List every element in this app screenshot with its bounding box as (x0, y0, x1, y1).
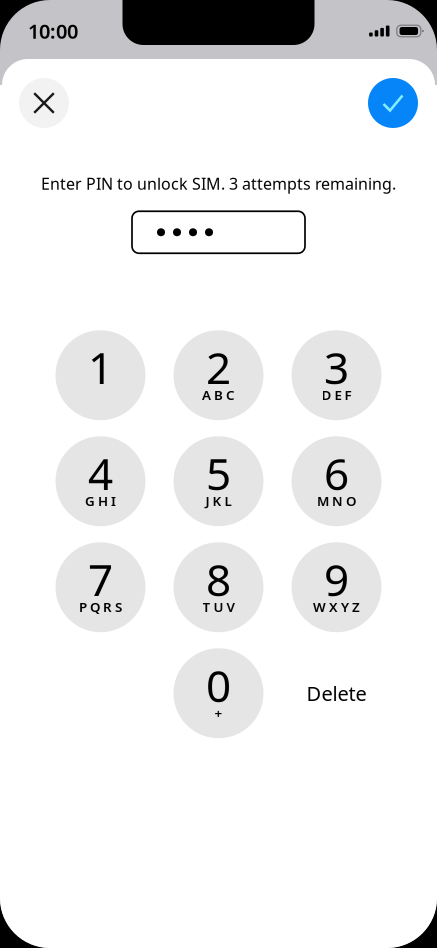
staticText: Delete (306, 680, 366, 707)
staticText: P Q R S (79, 598, 122, 616)
button[interactable]: Delete (291, 648, 381, 738)
staticText: 2 (206, 338, 231, 396)
button[interactable]: 4 (55, 436, 145, 526)
staticText: 10:00 (28, 18, 78, 44)
staticText: 0 (206, 656, 231, 714)
button[interactable]: 8 (173, 542, 263, 632)
staticText: + (214, 704, 222, 722)
staticText: W X Y Z (313, 598, 360, 616)
staticText: Enter PIN to unlock SIM. 3 attempts rema… (41, 173, 396, 194)
staticText: 4 (88, 444, 113, 502)
staticText: 5 (206, 444, 231, 502)
button[interactable]: Close (19, 78, 69, 128)
staticText: 1 (88, 338, 113, 396)
button[interactable]: 6 (291, 436, 381, 526)
staticText: J K L (205, 492, 231, 510)
button[interactable]: 1 (55, 330, 145, 420)
button[interactable]: 5 (173, 436, 263, 526)
staticText: A B C (202, 386, 235, 404)
staticText: D E F (321, 386, 351, 404)
staticText: M N O (317, 492, 356, 510)
button[interactable]: Confirm (368, 78, 418, 128)
staticText: T U V (202, 598, 234, 616)
staticText: 7 (88, 550, 113, 608)
staticText: 9 (324, 550, 349, 608)
button[interactable]: 0 (173, 648, 263, 738)
staticText: 3 (324, 338, 349, 396)
staticText: 8 (206, 550, 231, 608)
staticText: 6 (324, 444, 349, 502)
button[interactable]: 3 (291, 330, 381, 420)
button[interactable]: 9 (291, 542, 381, 632)
button[interactable]: 7 (55, 542, 145, 632)
button[interactable]: 2 (173, 330, 263, 420)
staticText: G H I (85, 492, 116, 510)
